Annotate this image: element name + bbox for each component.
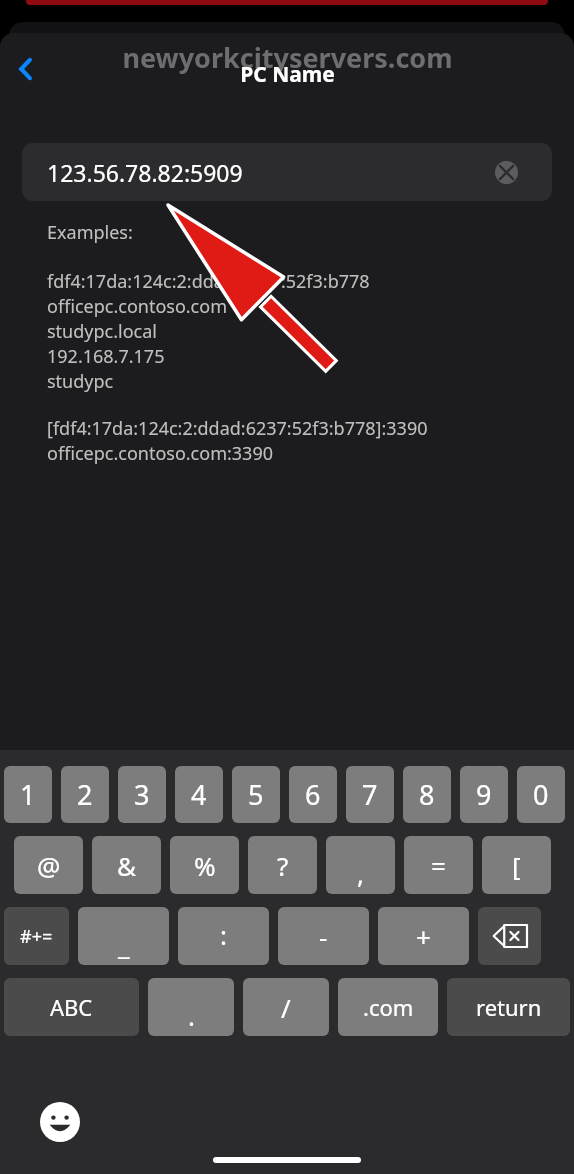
button[interactable]: 3 <box>118 766 166 823</box>
staticText: 123.56.78.82:5909 <box>47 157 243 188</box>
staticText: fdf4:17da:124c:2:ddad:6237:52f3:b778 <box>47 269 370 294</box>
staticText: 2 <box>77 776 93 813</box>
staticText: PC Name <box>240 60 335 89</box>
button[interactable]: , <box>326 836 395 894</box>
staticText: officepc.contoso.com <box>47 294 227 319</box>
button[interactable]: / <box>243 978 329 1036</box>
staticText: + <box>416 919 431 954</box>
staticText: _ <box>118 927 130 962</box>
staticText: 192.168.7.175 <box>47 344 165 369</box>
button[interactable]: Back <box>4 47 48 91</box>
button[interactable]: 0 <box>517 766 565 823</box>
button[interactable]: .com <box>338 978 438 1036</box>
button[interactable]: - <box>278 907 369 965</box>
staticText: 4 <box>191 776 207 813</box>
button[interactable]: 123.56.78.82:5909 <box>22 143 552 201</box>
staticText: : <box>220 917 227 952</box>
button[interactable]: return <box>447 978 570 1036</box>
button[interactable]: = <box>404 836 473 894</box>
button[interactable]: Clear text <box>495 161 518 184</box>
staticText: return <box>476 992 542 1022</box>
staticText: = <box>431 848 446 883</box>
staticText: newyorkcityservers.com <box>122 39 453 76</box>
button[interactable]: & <box>92 836 161 894</box>
staticText: @ <box>37 848 61 883</box>
button[interactable]: _ <box>78 907 169 965</box>
staticText: 3 <box>134 776 150 813</box>
staticText: 6 <box>305 776 321 813</box>
button[interactable]: 7 <box>346 766 394 823</box>
button[interactable]: 8 <box>403 766 451 823</box>
button[interactable]: ABC <box>4 978 139 1036</box>
button[interactable]: 9 <box>460 766 508 823</box>
button[interactable]: % <box>170 836 239 894</box>
staticText: studypc.local <box>47 319 157 344</box>
staticText: % <box>194 848 216 883</box>
staticText: - <box>319 919 328 954</box>
staticText: .com <box>363 992 414 1022</box>
staticText: , <box>357 856 364 891</box>
button[interactable]: [ <box>482 836 551 894</box>
staticText: ABC <box>50 992 93 1022</box>
button[interactable]: + <box>378 907 469 965</box>
button[interactable]: 4 <box>175 766 223 823</box>
staticText: 1 <box>20 776 36 813</box>
staticText: / <box>281 990 291 1025</box>
button[interactable]: ? <box>248 836 317 894</box>
staticText: 7 <box>362 776 378 813</box>
staticText: 0 <box>533 776 549 813</box>
button[interactable]: 5 <box>232 766 280 823</box>
staticText: . <box>188 998 195 1033</box>
staticText: 9 <box>476 776 492 813</box>
button[interactable]: Emoji keyboard <box>38 1100 82 1144</box>
button[interactable]: : <box>178 907 269 965</box>
staticText: #+= <box>20 924 53 949</box>
button[interactable]: 2 <box>61 766 109 823</box>
staticText: ? <box>277 848 289 883</box>
button[interactable]: Delete <box>478 907 541 965</box>
staticText: studypc <box>47 369 114 394</box>
staticText: 8 <box>419 776 435 813</box>
staticText: [ <box>512 848 521 883</box>
button[interactable]: 6 <box>289 766 337 823</box>
staticText: 5 <box>248 776 264 813</box>
button[interactable]: #+= <box>4 907 69 965</box>
staticText: [fdf4:17da:124c:2:ddad:6237:52f3:b778]:3… <box>47 416 428 441</box>
button[interactable]: @ <box>14 836 83 894</box>
staticText: & <box>117 848 137 883</box>
staticText: officepc.contoso.com:3390 <box>47 441 273 466</box>
button[interactable]: 1 <box>4 766 52 823</box>
staticText: Examples: <box>47 220 133 245</box>
button[interactable]: . <box>148 978 234 1036</box>
